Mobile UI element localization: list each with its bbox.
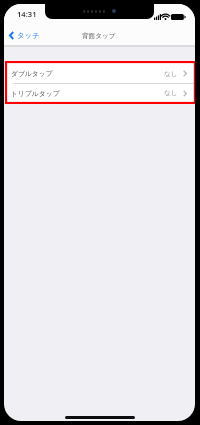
staticText: タッチ: [17, 31, 40, 40]
button[interactable]: トリプルタップ: [7, 84, 193, 102]
staticText: 背面タップ: [82, 32, 116, 40]
staticText: なし: [164, 70, 178, 78]
staticText: トリプルタップ: [11, 89, 60, 98]
staticText: なし: [164, 89, 178, 97]
button[interactable]: ダブルタップ: [7, 63, 193, 84]
staticText: ダブルタップ: [11, 69, 53, 78]
staticText: 14:31: [17, 9, 37, 19]
button[interactable]: タッチ: [4, 28, 46, 43]
